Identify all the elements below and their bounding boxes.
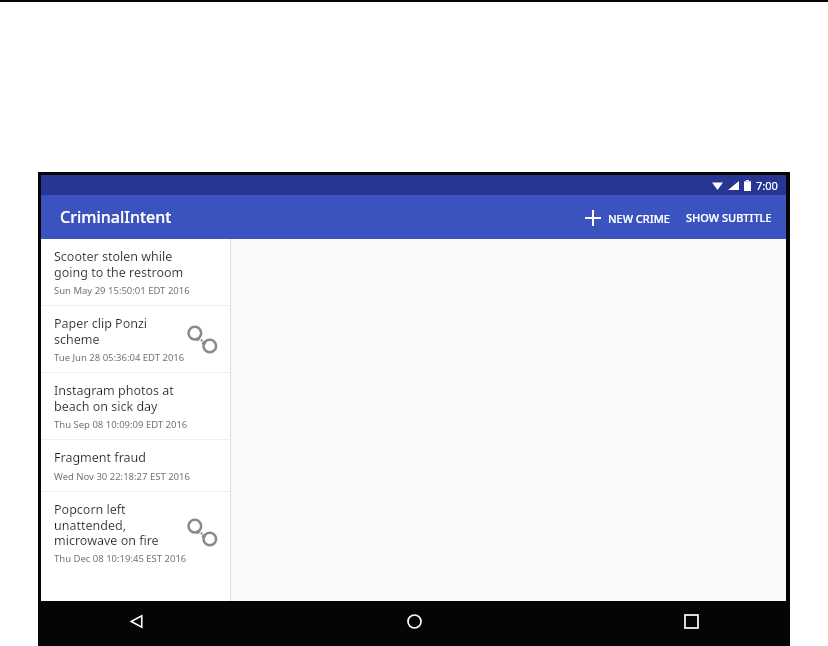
staticText: Wed Nov 30 22:18:27 EST 2016 [54, 470, 190, 483]
staticText: Fragment fraud [54, 449, 187, 466]
button[interactable]: Popcorn left unattended, microwave on fi… [41, 492, 230, 573]
staticText: Paper clip Ponzi scheme [54, 315, 187, 347]
button[interactable]: Back [119, 604, 154, 639]
button[interactable]: Home [397, 604, 432, 639]
staticText: Tue Jun 28 05:36:04 EDT 2016 [54, 351, 190, 364]
button[interactable]: Scooter stolen while going to the restro… [41, 239, 230, 305]
button[interactable]: Recent apps [675, 605, 708, 638]
staticText: 7:00 [756, 178, 778, 193]
other: Crime solved [186, 518, 220, 548]
button[interactable]: Paper clip Ponzi scheme [41, 306, 230, 372]
staticText: SHOW SUBTITLE [686, 210, 772, 225]
staticText: Thu Sep 08 10:09:09 EDT 2016 [54, 418, 190, 431]
button[interactable]: Instagram photos at beach on sick day [41, 373, 230, 439]
other: Crime solved [186, 325, 220, 355]
button[interactable]: NEW CRIME [577, 202, 678, 234]
button[interactable]: Fragment fraud [41, 440, 230, 491]
staticText: Thu Dec 08 10:19:45 EST 2016 [54, 552, 190, 565]
staticText: Scooter stolen while going to the restro… [54, 248, 187, 280]
staticText: Sun May 29 15:50:01 EDT 2016 [54, 284, 190, 297]
staticText: CriminalIntent [60, 206, 172, 228]
button[interactable]: SHOW SUBTITLE [678, 200, 780, 235]
staticText: Instagram photos at beach on sick day [54, 382, 187, 414]
staticText: NEW CRIME [608, 211, 670, 226]
staticText: Popcorn left unattended, microwave on fi… [54, 501, 187, 548]
